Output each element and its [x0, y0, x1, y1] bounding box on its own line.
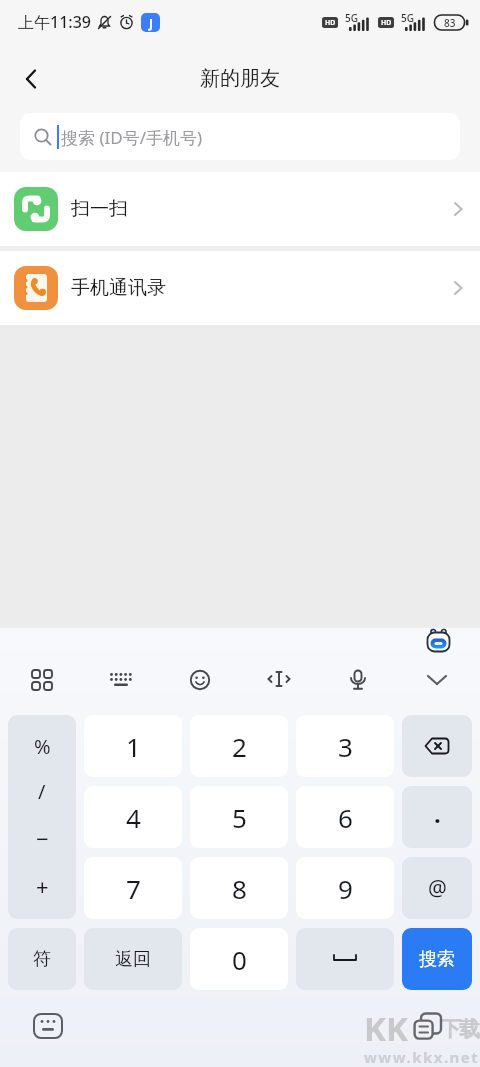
- button[interactable]: 4: [84, 786, 182, 848]
- staticText: HD: [325, 18, 336, 28]
- staticText: 下载: [441, 1016, 479, 1042]
- staticText: 5: [232, 800, 247, 835]
- staticText: J: [149, 15, 153, 31]
- staticText: 5G: [401, 11, 414, 25]
- button[interactable]: @: [402, 857, 472, 919]
- staticText: −: [36, 823, 49, 853]
- button[interactable]: [402, 715, 472, 777]
- button[interactable]: 8: [190, 857, 288, 919]
- staticText: 搜索 (ID号/手机号): [61, 126, 203, 149]
- button[interactable]: 手机通讯录: [0, 251, 480, 325]
- button[interactable]: [347, 669, 369, 691]
- staticText: @: [428, 874, 447, 903]
- staticText: 9: [338, 871, 353, 906]
- staticText: 83: [444, 16, 456, 30]
- button[interactable]: 9: [296, 857, 394, 919]
- staticText: KK: [364, 1006, 408, 1051]
- button[interactable]: [33, 1012, 63, 1040]
- staticText: 6: [338, 800, 353, 835]
- staticText: +: [36, 871, 49, 901]
- button[interactable]: 5: [190, 786, 288, 848]
- staticText: 搜索: [419, 948, 455, 971]
- staticText: 0: [232, 942, 247, 977]
- button[interactable]: 2: [190, 715, 288, 777]
- button[interactable]: .: [402, 786, 472, 848]
- staticText: 5G: [345, 11, 358, 25]
- staticText: 返回: [115, 948, 151, 971]
- button[interactable]: [31, 669, 53, 691]
- button[interactable]: 扫一扫: [0, 172, 480, 246]
- button[interactable]: [426, 629, 451, 654]
- button[interactable]: 搜索: [402, 928, 472, 990]
- button[interactable]: 返回: [84, 928, 182, 990]
- button[interactable]: 搜索 (ID号/手机号): [20, 113, 460, 160]
- staticText: %: [34, 733, 51, 760]
- button[interactable]: 1: [84, 715, 182, 777]
- staticText: 4: [126, 800, 141, 835]
- button[interactable]: [296, 928, 394, 990]
- staticText: 扫一扫: [71, 197, 128, 221]
- staticText: 新的朋友: [200, 66, 280, 91]
- button[interactable]: 3: [296, 715, 394, 777]
- staticText: 8: [232, 871, 247, 906]
- button[interactable]: 0: [190, 928, 288, 990]
- button[interactable]: [189, 669, 211, 691]
- staticText: www.kkx.net: [364, 1047, 480, 1067]
- button[interactable]: [109, 672, 133, 688]
- staticText: 上午11:39: [18, 11, 91, 33]
- button[interactable]: 6: [296, 786, 394, 848]
- staticText: /: [38, 778, 46, 805]
- staticText: 手机通讯录: [71, 276, 166, 300]
- staticText: 7: [126, 871, 141, 906]
- button[interactable]: 7: [84, 857, 182, 919]
- button[interactable]: %: [8, 715, 76, 919]
- staticText: 符: [33, 948, 51, 971]
- staticText: 1: [126, 729, 141, 764]
- button[interactable]: [267, 670, 291, 690]
- staticText: 3: [338, 729, 353, 764]
- staticText: .: [434, 797, 441, 830]
- staticText: HD: [381, 18, 392, 28]
- button[interactable]: 符: [8, 928, 76, 990]
- staticText: 2: [232, 729, 247, 764]
- button[interactable]: [20, 67, 44, 91]
- button[interactable]: [426, 674, 448, 688]
- button[interactable]: [412, 1012, 444, 1043]
